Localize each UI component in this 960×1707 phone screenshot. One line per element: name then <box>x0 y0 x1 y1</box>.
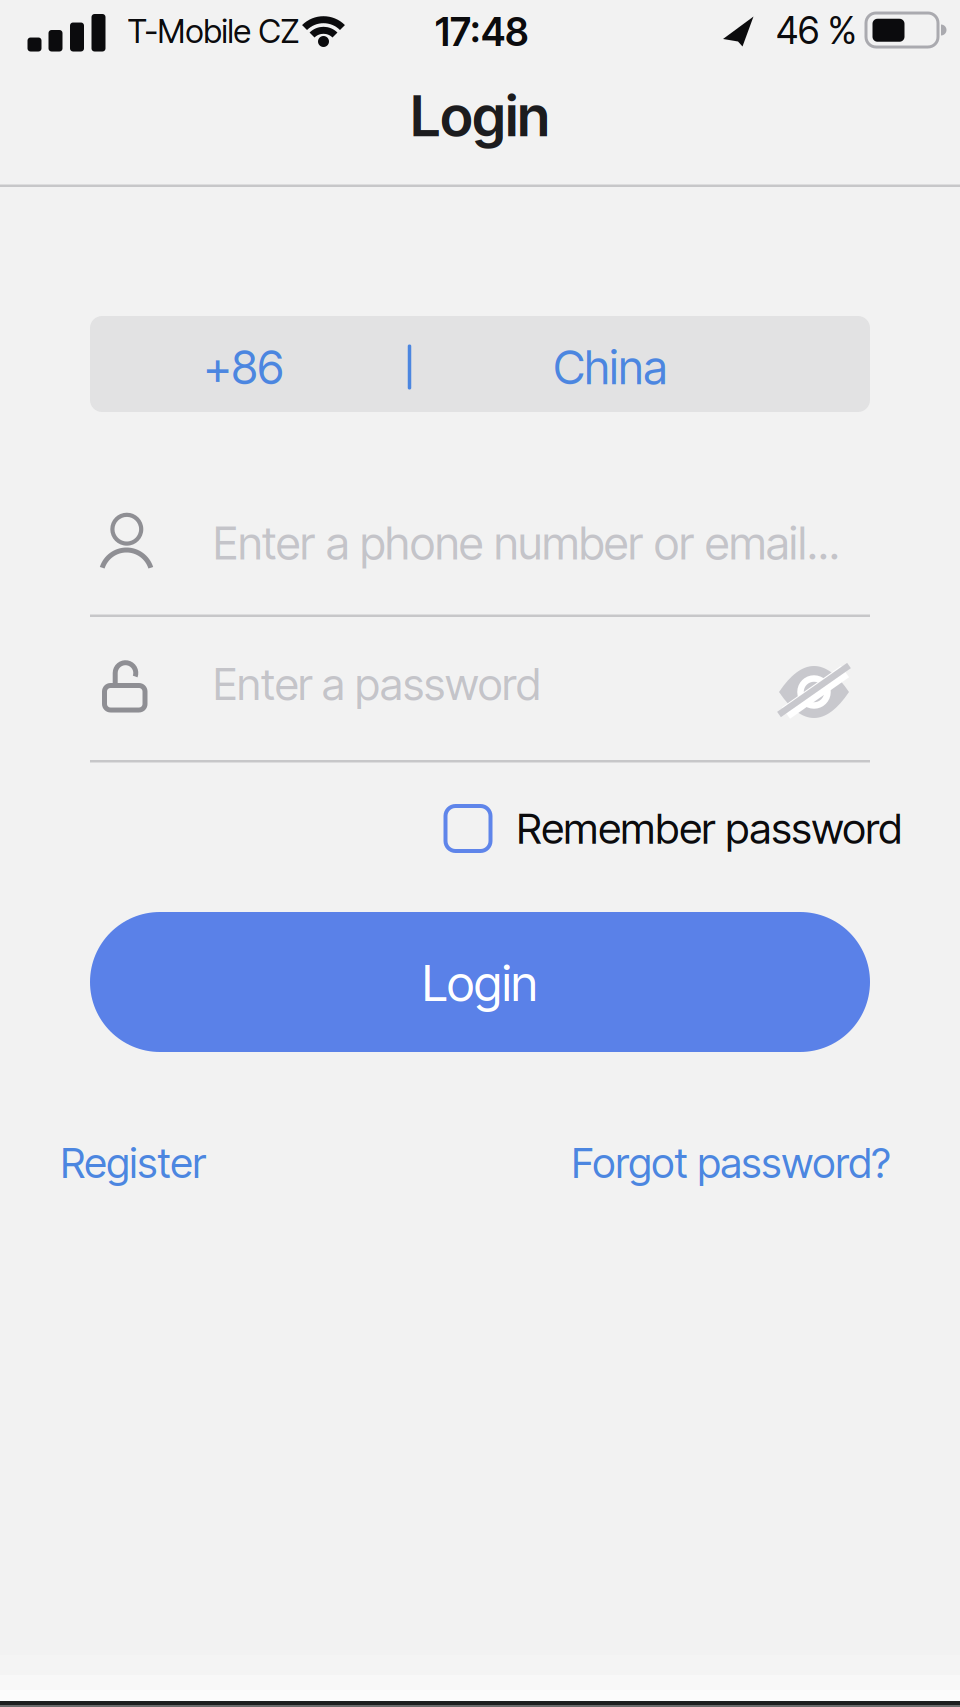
button[interactable]: Enter a phone number or email... <box>90 487 870 619</box>
button[interactable]: Remember password <box>445 805 902 851</box>
staticText: 17:48 <box>435 9 529 55</box>
button[interactable]: Register <box>60 1138 205 1188</box>
button[interactable]: Enter a password <box>90 634 870 766</box>
button[interactable]: Show password <box>773 654 857 726</box>
staticText: Login <box>410 82 549 150</box>
button[interactable]: +86 <box>90 316 870 412</box>
staticText: 46 % <box>776 8 857 53</box>
staticText: Remember password <box>516 803 902 854</box>
staticText: +86 <box>203 340 283 395</box>
staticText: Enter a password <box>213 657 541 711</box>
button[interactable]: Login <box>90 912 870 1052</box>
staticText: China <box>553 340 667 395</box>
staticText: Enter a phone number or email... <box>213 516 840 570</box>
staticText: T-Mobile CZ <box>127 11 299 51</box>
staticText: Forgot password? <box>571 1138 890 1188</box>
staticText: Login <box>422 953 538 1013</box>
staticText: Register <box>60 1138 205 1188</box>
button[interactable]: Forgot password? <box>571 1138 890 1188</box>
